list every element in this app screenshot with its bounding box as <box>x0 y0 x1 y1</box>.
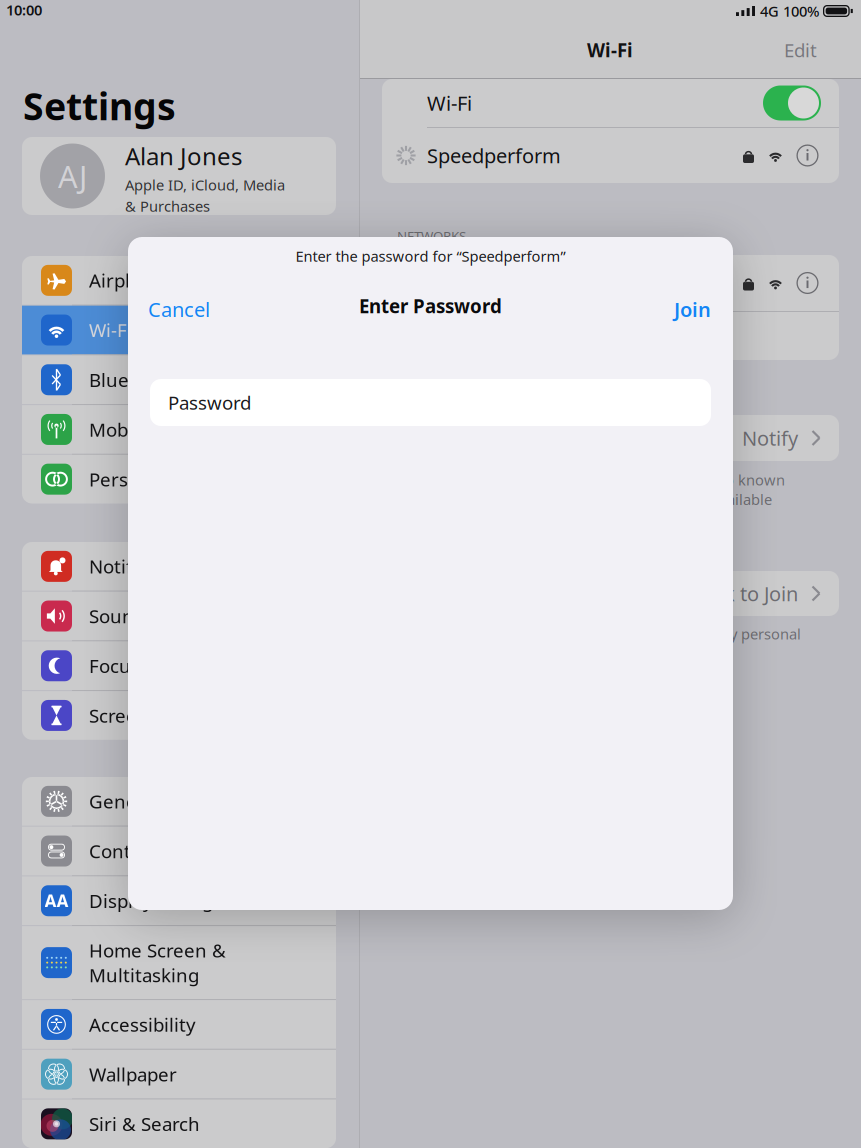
staticText: Cancel <box>148 296 210 323</box>
staticText: NETWORKS <box>397 227 466 245</box>
staticText: AA <box>44 889 68 912</box>
button[interactable]: Wallpaper <box>22 1050 336 1098</box>
button[interactable]: Siri & Search <box>22 1099 336 1148</box>
staticText: Enter the password for “Speedperform” <box>295 246 565 266</box>
staticText: Alan Jones <box>125 140 242 172</box>
staticText: Mobile Data <box>89 417 195 442</box>
button[interactable]: AJ <box>22 137 336 215</box>
button[interactable]: Notifications <box>22 542 336 591</box>
staticText: Sounds <box>89 604 154 628</box>
button[interactable]: Password <box>150 379 711 426</box>
button[interactable]: Cancel <box>148 296 210 323</box>
button[interactable]: Wi-Fi <box>22 306 336 354</box>
staticText: Wallpaper <box>89 1062 177 1087</box>
staticText: Ask to Join <box>701 580 798 607</box>
staticText: Screen Time <box>89 703 197 728</box>
staticText: & Purchases <box>125 196 210 216</box>
staticText: Wi-Fi <box>587 38 633 62</box>
staticText: Speedperform <box>427 142 561 169</box>
staticText: AJ <box>58 156 87 196</box>
staticText: Focus <box>89 653 140 678</box>
button[interactable]: Bluetooth <box>22 355 336 404</box>
staticText: Display & Brightness <box>89 888 273 913</box>
staticText: Wi-Fi <box>427 90 472 116</box>
staticText: Control Centre <box>89 839 219 863</box>
staticText: Accessibility <box>89 1012 196 1037</box>
staticText: Edit <box>784 38 817 62</box>
staticText: Bluetooth <box>89 367 177 392</box>
button[interactable]: Home Screen & Multitasking <box>22 926 336 999</box>
staticText: Notifications <box>89 554 200 579</box>
staticText: Notify <box>742 425 798 451</box>
button[interactable]: Airplane Mode <box>22 256 336 305</box>
staticText: Settings <box>23 81 176 131</box>
staticText: Home Screen & Multitasking <box>89 938 226 987</box>
button[interactable]: AA <box>22 876 336 925</box>
staticText: Join <box>674 296 711 323</box>
button[interactable]: Join <box>674 296 711 323</box>
button[interactable]: Sounds <box>22 592 336 640</box>
button[interactable]: General <box>22 777 336 826</box>
staticText: networks are available, you will be noti… <box>397 489 772 509</box>
button[interactable]: Focus <box>22 641 336 690</box>
staticText: Known networks will be joined automatica… <box>386 470 785 489</box>
button[interactable]: Wi-Fi on <box>763 85 821 120</box>
staticText: Allow this device to automatically disco… <box>397 624 801 643</box>
staticText: Enter Password <box>359 294 502 318</box>
button[interactable]: Control Centre <box>22 827 336 875</box>
button[interactable]: Personal Hotspot <box>22 455 336 503</box>
staticText: Airplane Mode <box>89 268 218 293</box>
button[interactable]: Mobile Data <box>22 405 336 454</box>
button[interactable]: Accessibility <box>22 1000 336 1049</box>
staticText: Password <box>168 390 251 415</box>
staticText: General <box>89 789 159 814</box>
staticText: 10:00 <box>6 0 42 19</box>
staticText: Personal Hotspot <box>89 467 241 492</box>
staticText: 4G 100% <box>760 1 819 21</box>
button[interactable]: Screen Time <box>22 691 336 740</box>
button[interactable]: Edit <box>784 38 817 62</box>
staticText: Siri & Search <box>89 1111 200 1136</box>
staticText: Apple ID, iCloud, Media <box>125 175 285 194</box>
staticText: Wi-Fi <box>89 318 132 342</box>
